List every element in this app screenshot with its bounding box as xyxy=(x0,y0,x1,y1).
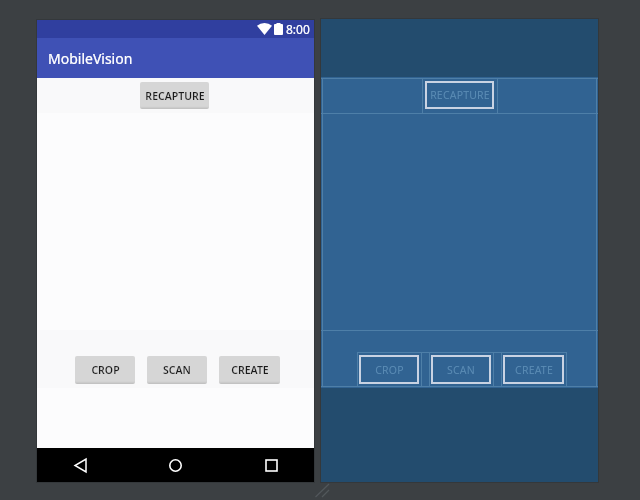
button[interactable]: RECAPTURE xyxy=(140,82,209,109)
staticText: CREATE xyxy=(515,363,553,377)
staticText: SCAN xyxy=(447,363,475,377)
staticText: 8:00 xyxy=(286,21,310,37)
staticText: SCAN xyxy=(163,363,191,377)
staticText: RECAPTURE xyxy=(145,89,205,103)
button[interactable]: Back xyxy=(63,448,97,482)
button[interactable]: SCAN xyxy=(431,355,491,384)
staticText: CROP xyxy=(91,363,120,377)
button[interactable]: SCAN xyxy=(147,356,207,384)
button[interactable]: CROP xyxy=(75,356,135,384)
staticText: CREATE xyxy=(231,363,269,377)
button[interactable]: RECAPTURE xyxy=(425,81,494,109)
staticText: MobileVision xyxy=(48,49,133,68)
staticText: RECAPTURE xyxy=(430,88,490,102)
button[interactable]: CREATE xyxy=(219,356,280,384)
button[interactable]: CROP xyxy=(359,355,419,384)
button[interactable]: CREATE xyxy=(503,355,564,384)
button[interactable]: Home xyxy=(158,448,192,482)
staticText: CROP xyxy=(375,363,404,377)
button[interactable]: Recents xyxy=(254,448,288,482)
